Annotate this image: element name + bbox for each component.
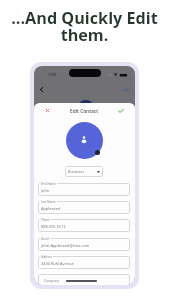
staticText: Phone (41, 218, 50, 222)
staticText: 3494 Kuhl Avenue (41, 261, 74, 266)
button[interactable]: Back (35, 83, 48, 96)
staticText: Edit (123, 87, 130, 92)
staticText: First Name (41, 182, 56, 186)
staticText: John-Appleseed@mac.com (41, 243, 90, 248)
button[interactable]: Company (38, 274, 130, 285)
staticText: 10:38 (48, 73, 57, 77)
staticText: Appleseed (41, 206, 61, 211)
staticText: Email (41, 237, 49, 241)
button[interactable] (38, 256, 130, 269)
staticText: Edit Contact (70, 108, 99, 115)
staticText: John (41, 188, 50, 193)
button[interactable]: Change photo (95, 150, 100, 155)
button[interactable]: Save (116, 106, 125, 115)
button[interactable]: Business (68, 166, 100, 177)
staticText: Business (68, 169, 85, 174)
staticText: Company (44, 278, 60, 283)
button[interactable]: Edit (123, 87, 130, 92)
button[interactable] (66, 122, 103, 159)
button[interactable]: Cancel (43, 106, 52, 115)
staticText: 888-555-5512 (41, 224, 66, 229)
staticText: ...And Quickly Edit them. (11, 7, 158, 46)
staticText: Last Name (41, 200, 56, 204)
button[interactable] (38, 238, 130, 251)
button[interactable] (38, 219, 130, 232)
button[interactable] (38, 183, 130, 196)
button[interactable] (38, 201, 130, 214)
staticText: Address (41, 255, 52, 259)
